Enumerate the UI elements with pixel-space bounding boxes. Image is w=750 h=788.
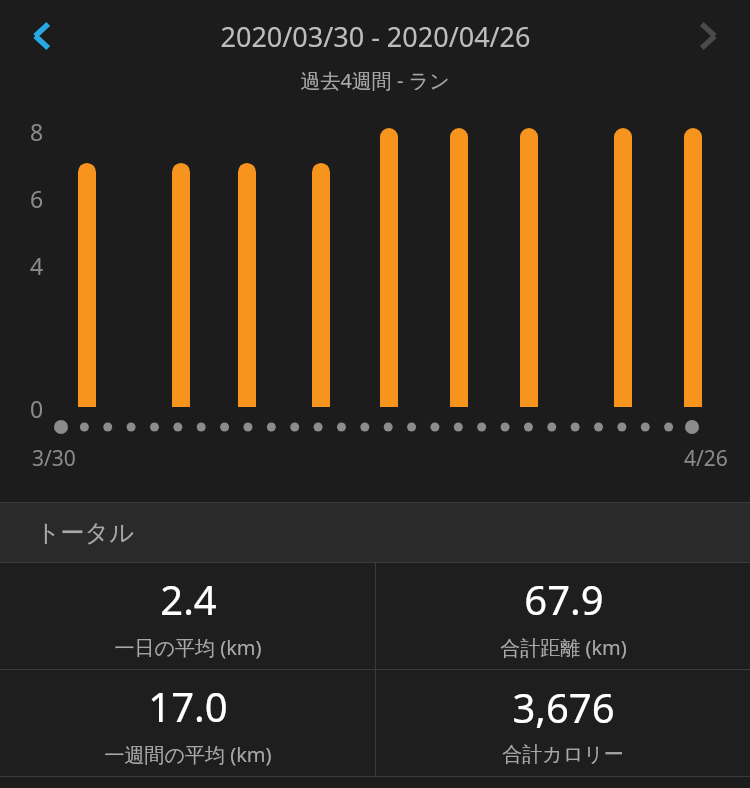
staticText: 67.9	[524, 572, 604, 626]
staticText: 一週間の平均 (km)	[104, 741, 272, 768]
staticText: 2.4	[160, 572, 217, 626]
button[interactable]: 2.4	[0, 563, 375, 669]
button[interactable]: Previous period	[10, 6, 74, 66]
staticText: 3,676	[512, 680, 615, 734]
staticText: 3/30	[32, 444, 76, 473]
button[interactable]: 67.9	[376, 563, 750, 669]
staticText: 合計距離 (km)	[500, 634, 627, 661]
button[interactable]: 3,676	[376, 670, 750, 776]
staticText: 4/26	[684, 444, 728, 473]
button[interactable]: Next period	[676, 6, 740, 66]
staticText: 8	[30, 116, 44, 147]
staticText: 6	[30, 183, 44, 214]
button[interactable]: 17.0	[0, 670, 375, 776]
staticText: 2020/03/30 - 2020/04/26	[220, 18, 531, 55]
staticText: 一日の平均 (km)	[114, 634, 262, 661]
staticText: 17.0	[148, 679, 228, 733]
staticText: トータル	[36, 518, 134, 548]
staticText: 0	[30, 393, 44, 424]
staticText: 4	[30, 250, 44, 281]
staticText: 過去4週間 - ラン	[300, 67, 450, 94]
staticText: 合計カロリー	[502, 742, 624, 767]
